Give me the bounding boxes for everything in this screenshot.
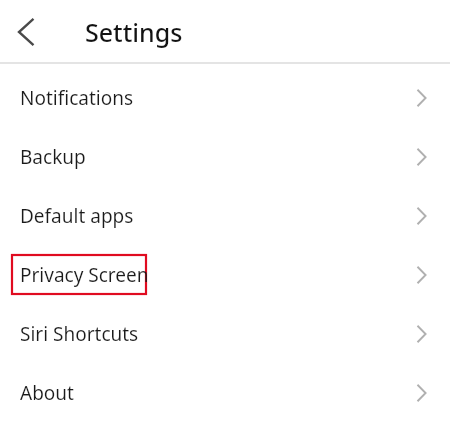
staticText: Default apps bbox=[20, 203, 134, 229]
staticText: Backup bbox=[20, 144, 86, 170]
staticText: Settings bbox=[85, 15, 183, 49]
staticText: Siri Shortcuts bbox=[20, 321, 139, 347]
button[interactable]: Privacy Screen bbox=[0, 245, 450, 304]
button[interactable]: About bbox=[0, 363, 450, 422]
button[interactable]: Default apps bbox=[0, 186, 450, 245]
button[interactable]: Backup bbox=[0, 127, 450, 186]
button[interactable]: Siri Shortcuts bbox=[0, 304, 450, 363]
button[interactable]: Back bbox=[8, 13, 46, 51]
button[interactable]: Notifications bbox=[0, 68, 450, 127]
staticText: Notifications bbox=[20, 85, 134, 111]
staticText: About bbox=[20, 380, 74, 406]
staticText: Privacy Screen bbox=[20, 262, 149, 288]
